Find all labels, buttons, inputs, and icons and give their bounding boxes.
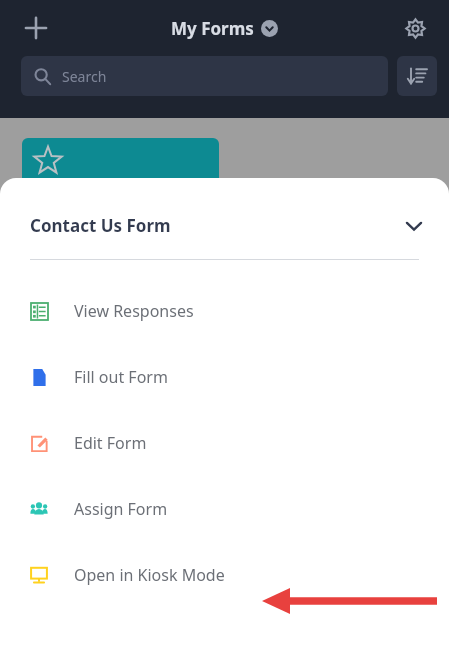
button[interactable]: Settings (393, 6, 437, 50)
button[interactable]: My Forms (171, 17, 278, 40)
button[interactable]: Edit Form (0, 410, 449, 476)
staticText: Open in Kiosk Mode (74, 564, 225, 586)
button[interactable]: Open in Kiosk Mode (0, 542, 449, 608)
staticText: View Responses (74, 300, 194, 322)
button[interactable]: New form (14, 6, 58, 50)
staticText: Assign Form (74, 498, 168, 520)
button[interactable]: Contact Us Form (30, 214, 425, 237)
staticText: Fill out Form (74, 366, 168, 388)
staticText: Contact Us Form (30, 214, 171, 237)
staticText: My Forms (171, 17, 254, 40)
button[interactable]: Assign Form (0, 476, 449, 542)
button[interactable]: Fill out Form (0, 344, 449, 410)
button[interactable] (22, 138, 219, 200)
staticText: Edit Form (74, 432, 147, 454)
button[interactable]: View Responses (0, 278, 449, 344)
button[interactable]: Search (21, 56, 388, 96)
staticText: Search (62, 67, 107, 86)
button[interactable]: Sort (397, 56, 437, 96)
